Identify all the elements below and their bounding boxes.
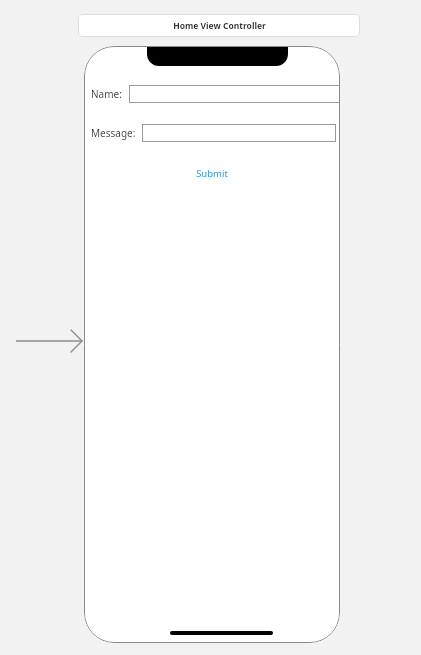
- staticText: Name:: [91, 87, 122, 101]
- button[interactable]: Message text field: [142, 124, 336, 142]
- button[interactable]: Submit: [190, 165, 234, 181]
- staticText: Submit: [196, 167, 228, 180]
- other: Entry point arrow: [16, 330, 84, 352]
- button[interactable]: Home View Controller: [78, 14, 360, 37]
- button[interactable]: Name text field: [129, 85, 340, 103]
- staticText: Home View Controller: [173, 20, 266, 32]
- staticText: Message:: [91, 126, 136, 140]
